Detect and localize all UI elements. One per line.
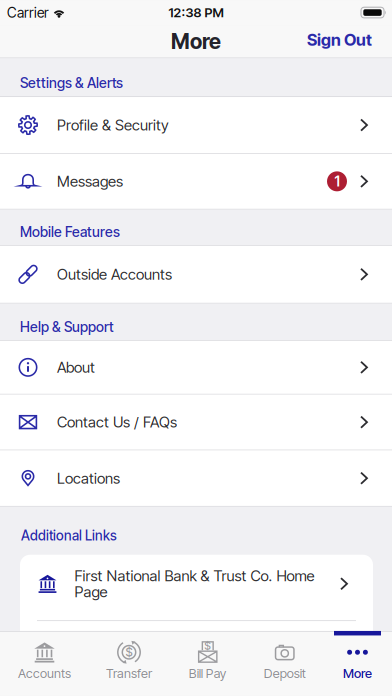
staticText: More: [343, 666, 372, 681]
button[interactable]: Locations: [0, 450, 392, 506]
button[interactable]: Profile & Security: [0, 97, 392, 153]
staticText: $: [125, 645, 132, 659]
staticText: Transfer: [106, 666, 152, 681]
staticText: 12:38 PM: [168, 5, 223, 20]
button[interactable]: $: [169, 640, 246, 681]
staticText: First National Bank & Trust Co. Home Pag…: [74, 568, 314, 600]
staticText: 1: [334, 173, 339, 190]
staticText: Additional Links: [21, 528, 117, 544]
button[interactable]: Messages: [0, 154, 392, 209]
staticText: Deposit: [264, 666, 306, 681]
staticText: Accounts: [18, 666, 71, 681]
staticText: Sign Out: [307, 30, 372, 50]
staticText: Settings & Alerts: [20, 75, 123, 91]
staticText: Mobile Features: [20, 223, 120, 240]
staticText: Outside Accounts: [57, 265, 172, 283]
button[interactable]: $: [89, 640, 169, 681]
staticText: Profile & Security: [57, 116, 169, 134]
staticText: Contact Us / FAQs: [57, 413, 177, 431]
staticText: Locations: [57, 469, 120, 487]
button[interactable]: Sign Out: [307, 32, 372, 51]
staticText: Help & Support: [20, 318, 114, 335]
button[interactable]: First National Bank & Trust Co. Home Pag…: [20, 555, 373, 613]
button[interactable]: Contact Us / FAQs: [0, 395, 392, 450]
staticText: Messages: [57, 172, 123, 190]
button[interactable]: Accounts: [0, 640, 89, 681]
button[interactable]: More: [323, 640, 392, 681]
button[interactable]: About: [0, 341, 392, 394]
staticText: $: [204, 639, 211, 652]
staticText: Bill Pay: [189, 666, 227, 681]
staticText: Carrier: [7, 4, 49, 21]
staticText: About: [57, 358, 95, 376]
staticText: More: [171, 29, 221, 54]
button[interactable]: Deposit: [246, 640, 323, 681]
button[interactable]: Outside Accounts: [0, 246, 392, 303]
